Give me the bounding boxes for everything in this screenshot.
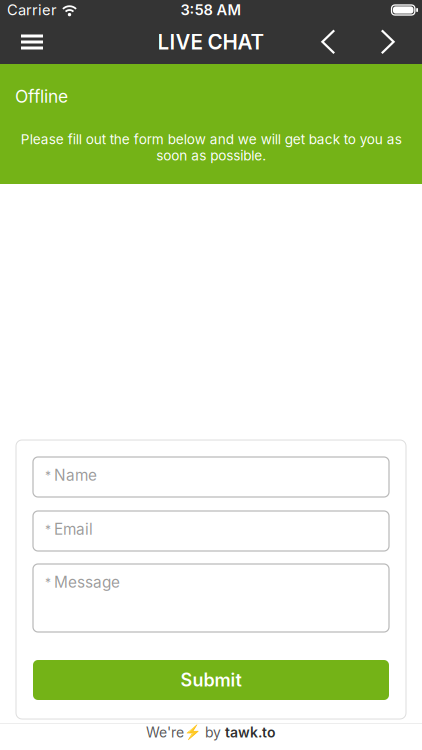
staticText: Name: [54, 466, 97, 485]
staticText: We're: [146, 724, 184, 741]
button[interactable]: Back: [307, 20, 350, 64]
staticText: Message: [54, 573, 120, 592]
staticText: Offline: [15, 86, 68, 107]
staticText: *: [45, 468, 51, 482]
button[interactable]: *: [33, 457, 389, 497]
staticText: 3:58 AM: [180, 1, 241, 19]
staticText: Carrier: [7, 1, 57, 19]
staticText: tawk.to: [225, 724, 276, 741]
staticText: LIVE CHAT: [157, 29, 264, 54]
staticText: by: [201, 724, 225, 741]
button[interactable]: *: [33, 564, 389, 632]
staticText: Please fill out the form below and we wi…: [20, 131, 401, 164]
button[interactable]: Menu: [0, 20, 59, 64]
button[interactable]: Forward: [350, 20, 422, 64]
staticText: ⚡: [184, 724, 201, 741]
staticText: Email: [54, 520, 93, 539]
button[interactable]: *: [33, 511, 389, 551]
button[interactable]: Submit: [33, 660, 389, 700]
staticText: *: [45, 522, 51, 536]
staticText: Submit: [180, 669, 241, 691]
button[interactable]: We're: [146, 724, 276, 741]
staticText: *: [45, 575, 51, 589]
